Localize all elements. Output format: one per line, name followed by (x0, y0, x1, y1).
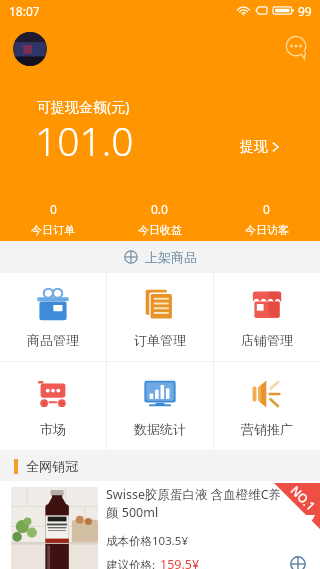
button[interactable]: Add product (287, 553, 309, 569)
button[interactable]: 全网销冠 (14, 458, 78, 474)
staticText: 订单管理 (134, 332, 186, 348)
button[interactable]: 上架商品 (0, 241, 320, 273)
staticText: NO.1 (288, 482, 319, 514)
staticText: 提现 (240, 138, 268, 156)
staticText: 成本价格103.5¥ (106, 533, 188, 549)
staticText: 全网销冠 (26, 458, 78, 474)
staticText: 上架商品 (145, 249, 197, 265)
button[interactable]: 店铺管理 (214, 273, 320, 361)
staticText: 159.5¥ (160, 556, 200, 569)
staticText: 营销推广 (241, 421, 293, 437)
button[interactable]: 订单管理 (107, 273, 213, 361)
button[interactable]: 营销推广 (214, 362, 320, 450)
button[interactable]: 商品管理 (0, 273, 106, 361)
button[interactable]: Profile avatar (13, 32, 47, 66)
staticText: 99 (298, 3, 312, 19)
staticText: 数据统计 (134, 421, 186, 437)
staticText: 商品管理 (27, 332, 79, 348)
button[interactable]: 0 (0, 198, 106, 240)
staticText: 0 (263, 201, 270, 217)
staticText: 今日订单 (31, 223, 75, 237)
staticText: 建议价格: (106, 557, 156, 569)
staticText: 0 (50, 201, 57, 217)
button[interactable]: 提现 (235, 134, 284, 160)
button[interactable]: 0 (213, 198, 320, 240)
staticText: 今日收益 (138, 223, 182, 237)
button[interactable]: 数据统计 (107, 362, 213, 450)
button[interactable]: 0.0 (106, 198, 213, 240)
staticText: 101.0 (35, 114, 134, 167)
button[interactable]: Product photo (11, 487, 98, 569)
button[interactable]: More options (283, 34, 309, 60)
staticText: 店铺管理 (241, 332, 293, 348)
staticText: 市场 (40, 421, 66, 437)
staticText: 18:07 (9, 3, 40, 19)
staticText: Swisse胶原蛋白液 含血橙维C养颜 500ml (106, 486, 288, 521)
button[interactable]: 市场 (0, 362, 106, 450)
staticText: 可提现金额(元) (37, 97, 130, 116)
staticText: 今日访客 (245, 223, 289, 237)
staticText: 0.0 (151, 201, 168, 217)
